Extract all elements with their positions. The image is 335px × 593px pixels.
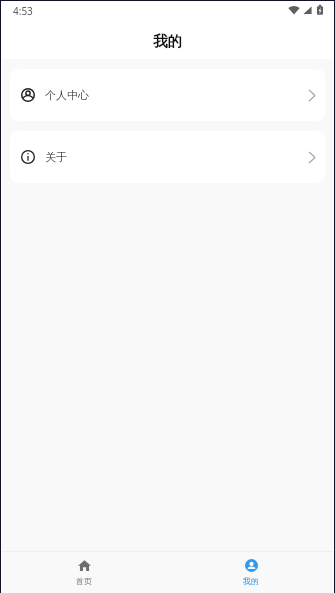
button[interactable]: 我的 bbox=[167, 552, 335, 593]
staticText: 我的 bbox=[153, 32, 182, 50]
staticText: 首页 bbox=[76, 576, 92, 586]
button[interactable]: 个人中心 bbox=[10, 69, 325, 121]
staticText: 我的 bbox=[243, 576, 259, 586]
button[interactable]: 首页 bbox=[0, 552, 167, 593]
staticText: 个人中心 bbox=[45, 88, 89, 102]
staticText: 4:53 bbox=[13, 4, 33, 18]
button[interactable]: 关于 bbox=[10, 131, 325, 183]
staticText: 关于 bbox=[45, 150, 67, 164]
